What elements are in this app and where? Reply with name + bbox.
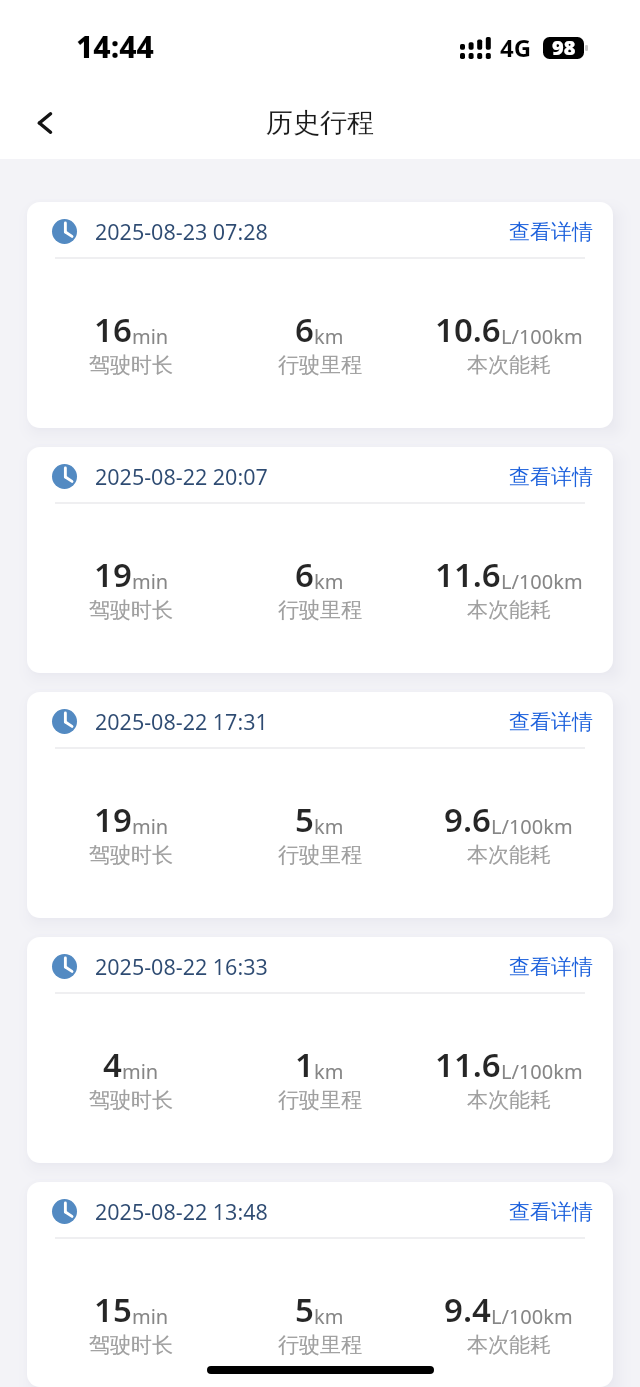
staticText: 查看详情 [509, 1199, 593, 1225]
button[interactable]: 查看详情 [509, 954, 593, 980]
staticText: 驾驶时长 [89, 597, 173, 623]
staticText: 10.6 [435, 307, 501, 352]
staticText: 本次能耗 [467, 1087, 551, 1113]
staticText: km [314, 1058, 344, 1085]
staticText: 本次能耗 [467, 352, 551, 378]
staticText: 9.4 [444, 1287, 491, 1332]
staticText: 4G [500, 31, 532, 64]
staticText: 1 [295, 1042, 314, 1087]
staticText: 行驶里程 [278, 352, 362, 378]
staticText: L/100km [491, 813, 573, 840]
staticText: L/100km [501, 323, 583, 350]
staticText: 本次能耗 [467, 1332, 551, 1358]
button[interactable]: 查看详情 [509, 709, 593, 735]
staticText: 查看详情 [509, 464, 593, 490]
staticText: min [132, 813, 169, 840]
staticText: km [314, 813, 344, 840]
staticText: 2025-08-22 20:07 [95, 462, 268, 491]
staticText: 行驶里程 [278, 1087, 362, 1113]
staticText: min [132, 568, 169, 595]
staticText: min [132, 1303, 169, 1330]
staticText: 2025-08-22 16:33 [95, 952, 268, 981]
staticText: min [122, 1058, 159, 1085]
staticText: L/100km [501, 568, 583, 595]
staticText: 5 [295, 1287, 314, 1332]
staticText: 4 [103, 1042, 122, 1087]
staticText: 2025-08-22 13:48 [95, 1197, 268, 1226]
staticText: 驾驶时长 [89, 1332, 173, 1358]
button[interactable]: Back [19, 97, 71, 149]
staticText: 98 [552, 37, 576, 56]
staticText: 行驶里程 [278, 1332, 362, 1358]
button[interactable]: 查看详情 [509, 464, 593, 490]
staticText: 14:44 [76, 26, 154, 67]
button[interactable]: 查看详情 [509, 219, 593, 245]
button[interactable]: 2025-08-22 16:33 [27, 937, 613, 1163]
button[interactable]: 2025-08-22 20:07 [27, 447, 613, 673]
button[interactable]: 2025-08-22 13:48 [27, 1182, 613, 1387]
staticText: 19 [94, 797, 132, 842]
staticText: 本次能耗 [467, 597, 551, 623]
staticText: 驾驶时长 [89, 1087, 173, 1113]
staticText: 11.6 [435, 552, 501, 597]
staticText: 19 [94, 552, 132, 597]
staticText: 2025-08-23 07:28 [95, 217, 268, 246]
staticText: 6 [295, 552, 314, 597]
button[interactable]: 2025-08-23 07:28 [27, 202, 613, 428]
staticText: 5 [295, 797, 314, 842]
staticText: 行驶里程 [278, 842, 362, 868]
staticText: km [314, 323, 344, 350]
button[interactable]: 2025-08-22 17:31 [27, 692, 613, 918]
staticText: 本次能耗 [467, 842, 551, 868]
staticText: 11.6 [435, 1042, 501, 1087]
staticText: 15 [94, 1287, 132, 1332]
staticText: 查看详情 [509, 709, 593, 735]
staticText: 查看详情 [509, 219, 593, 245]
staticText: 16 [94, 307, 132, 352]
staticText: 9.6 [444, 797, 491, 842]
staticText: 历史行程 [266, 106, 374, 140]
button[interactable]: 查看详情 [509, 1199, 593, 1225]
staticText: L/100km [491, 1303, 573, 1330]
staticText: 查看详情 [509, 954, 593, 980]
staticText: 2025-08-22 17:31 [95, 707, 268, 736]
staticText: 驾驶时长 [89, 842, 173, 868]
staticText: L/100km [501, 1058, 583, 1085]
staticText: 行驶里程 [278, 597, 362, 623]
staticText: 驾驶时长 [89, 352, 173, 378]
staticText: km [314, 568, 344, 595]
staticText: 6 [295, 307, 314, 352]
staticText: km [314, 1303, 344, 1330]
staticText: min [132, 323, 169, 350]
